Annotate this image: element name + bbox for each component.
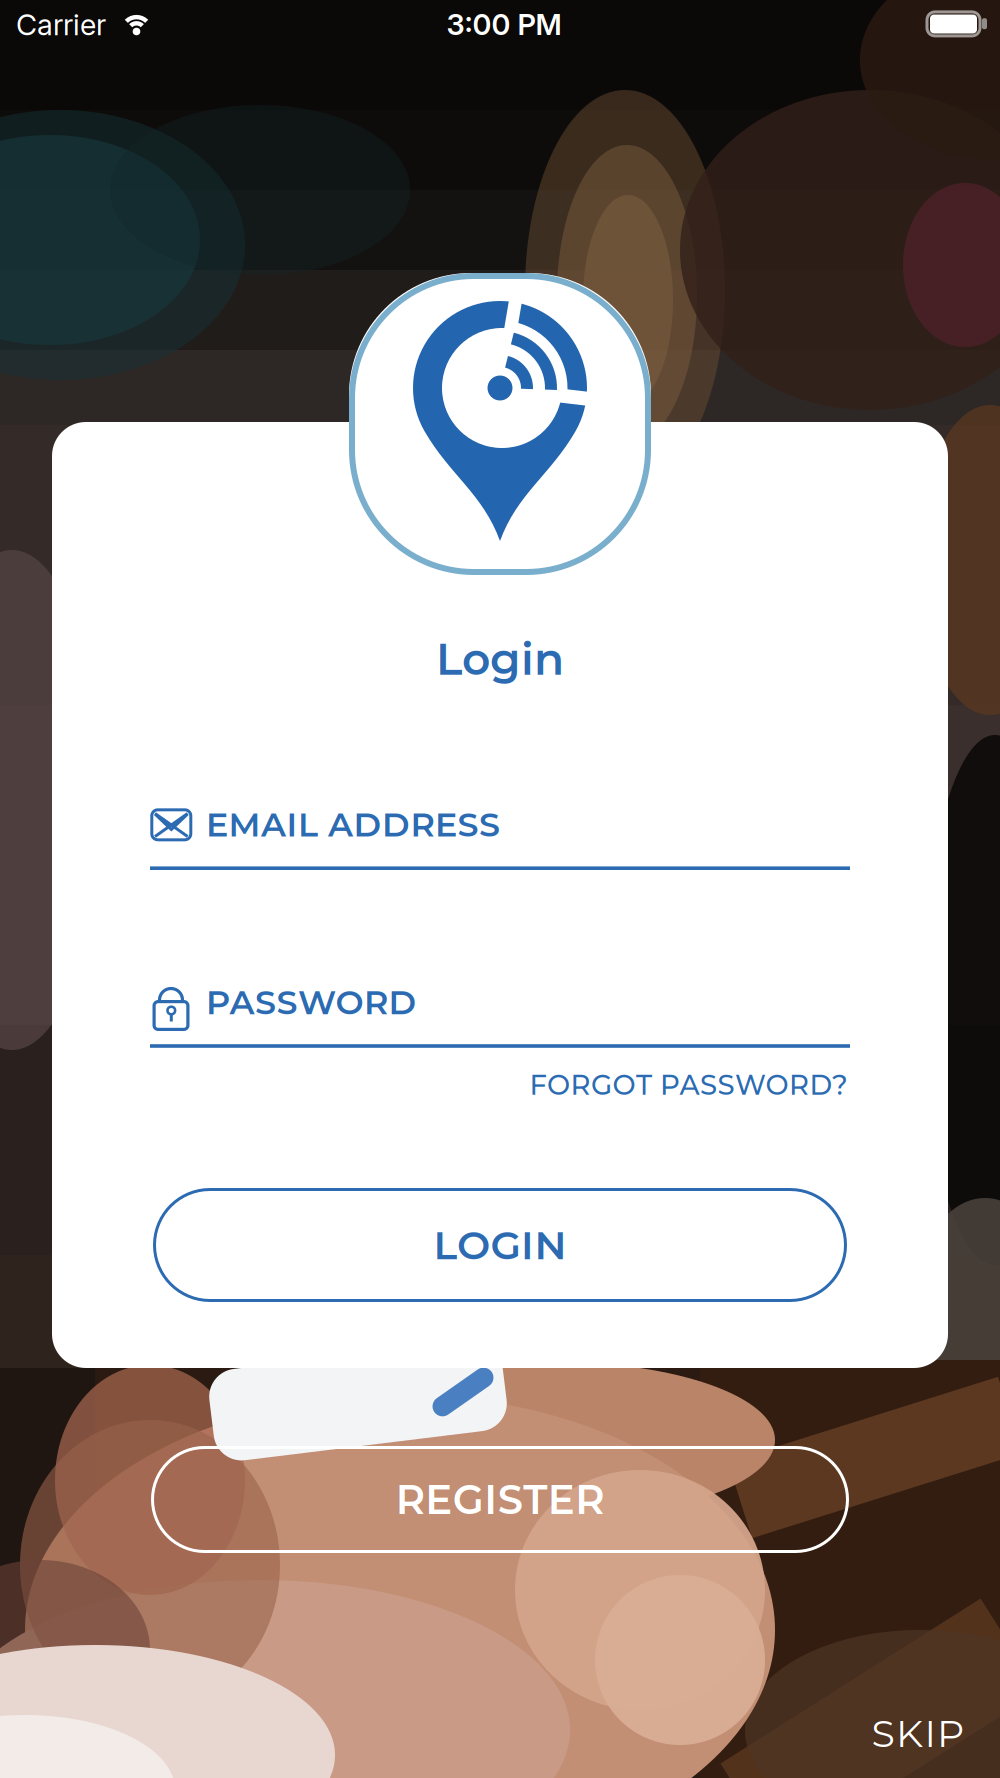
staticText: Login: [436, 632, 564, 686]
button[interactable]: LOGIN: [153, 1188, 847, 1302]
staticText: PASSWORD: [206, 982, 416, 1023]
button[interactable]: SKIP: [764, 1698, 964, 1768]
button[interactable]: Email address: [147, 782, 851, 868]
staticText: FORGOT PASSWORD?: [529, 1068, 848, 1101]
button[interactable]: REGISTER: [151, 1446, 849, 1553]
staticText: REGISTER: [396, 1475, 604, 1524]
staticText: LOGIN: [433, 1221, 566, 1269]
staticText: SKIP: [871, 1710, 964, 1757]
staticText: 3:00 PM: [446, 7, 561, 42]
staticText: EMAIL ADDRESS: [206, 804, 500, 845]
staticText: Carrier: [16, 7, 106, 42]
button[interactable]: Password: [147, 959, 851, 1045]
button[interactable]: FORGOT PASSWORD?: [148, 1057, 848, 1113]
